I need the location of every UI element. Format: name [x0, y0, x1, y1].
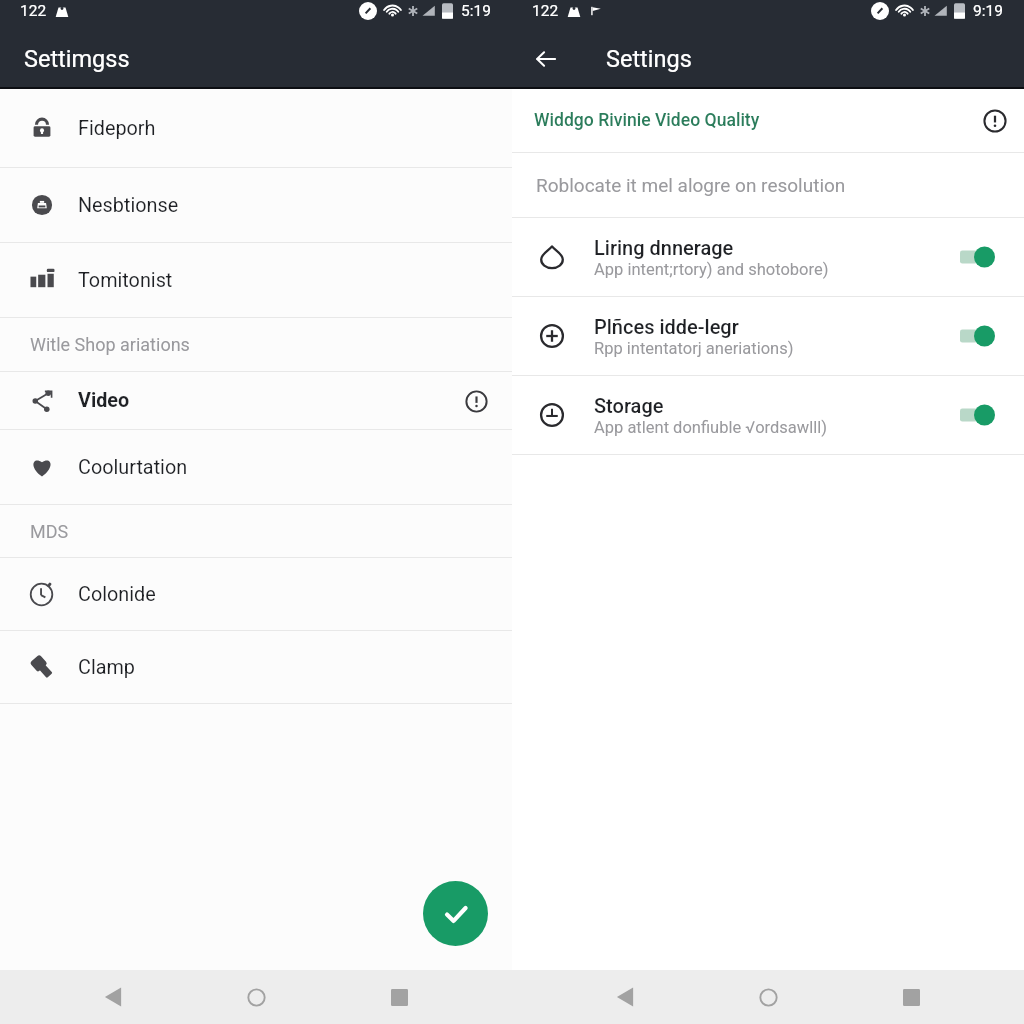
button[interactable]: Back	[532, 45, 560, 73]
button[interactable]: Info	[980, 106, 1010, 136]
staticText: Video	[78, 389, 130, 412]
button[interactable]: Clamp	[0, 631, 512, 703]
staticText: Widdgo Rivinie Video Quality	[534, 110, 760, 131]
button[interactable]: Tomitonist	[0, 243, 512, 317]
staticText: Settings	[606, 45, 692, 73]
button[interactable]: Video	[0, 372, 512, 429]
button[interactable]: Liring dnnerage	[512, 218, 1024, 296]
staticText: App atlent donfiuble √ordsawlll)	[594, 418, 827, 437]
staticText: Witle Shop ariations	[30, 334, 190, 355]
button[interactable]: Recents	[889, 975, 933, 1019]
staticText: Clamp	[78, 656, 135, 679]
staticText: 5:19	[461, 2, 491, 20]
staticText: 9:19	[973, 2, 1003, 20]
button[interactable]: Confirm	[423, 881, 488, 946]
button[interactable]: Home	[746, 975, 790, 1019]
button[interactable]: Toggle Plñces idde-legr	[949, 319, 995, 353]
staticText: App intent;rtory) and shotobore)	[594, 260, 829, 279]
button[interactable]: Colonide	[0, 558, 512, 630]
button[interactable]: Toggle Liring dnnerage	[949, 240, 995, 274]
staticText: 122	[20, 2, 47, 20]
staticText: Roblocate it mel alogre on resolution	[536, 174, 846, 196]
button[interactable]: Back	[603, 975, 647, 1019]
button[interactable]: Home	[234, 975, 278, 1019]
staticText: 122	[532, 2, 559, 20]
button[interactable]: Coolurtation	[0, 430, 512, 504]
button[interactable]: Recents	[377, 975, 421, 1019]
button[interactable]: Storage	[512, 376, 1024, 454]
staticText: Colonide	[78, 583, 156, 606]
staticText: Tomitonist	[78, 269, 173, 292]
button[interactable]: Info	[462, 387, 490, 415]
staticText: Coolurtation	[78, 456, 188, 479]
staticText: Fideporh	[78, 117, 156, 140]
staticText: Liring dnnerage	[594, 236, 734, 259]
staticText: Rpp intentatorj aneriations)	[594, 339, 794, 358]
staticText: Storage	[594, 394, 664, 417]
button[interactable]: Plñces idde-legr	[512, 297, 1024, 375]
staticText: Settimgss	[24, 45, 130, 73]
staticText: Nesbtionse	[78, 194, 179, 217]
staticText: Plñces idde-legr	[594, 315, 739, 338]
button[interactable]: Back	[91, 975, 135, 1019]
staticText: MDS	[30, 521, 69, 542]
button[interactable]: Toggle Storage	[949, 398, 995, 432]
button[interactable]: Fideporh	[0, 89, 512, 167]
button[interactable]: Nesbtionse	[0, 168, 512, 242]
